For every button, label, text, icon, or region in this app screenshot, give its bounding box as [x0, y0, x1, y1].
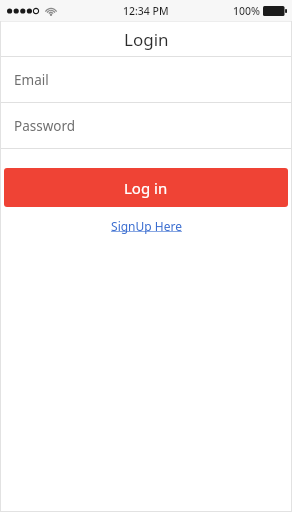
staticText: Log in [124, 178, 168, 198]
staticText: SignUp Here [111, 218, 182, 234]
staticText: 100% [233, 4, 260, 18]
staticText: Email [14, 71, 49, 89]
staticText: 12:34 PM [123, 4, 169, 18]
staticText: Password [14, 117, 76, 135]
button[interactable]: Email [0, 57, 292, 102]
staticText: Login [124, 28, 169, 51]
button[interactable]: Log in [4, 168, 288, 207]
button[interactable]: SignUp Here [105, 216, 188, 236]
button[interactable]: Password [0, 103, 292, 148]
